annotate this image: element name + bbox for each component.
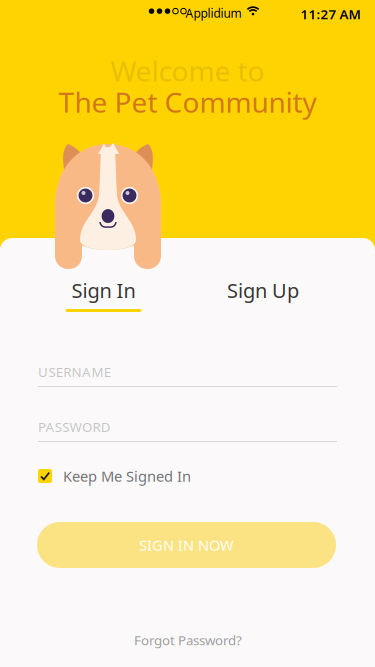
button[interactable]: Keep Me Signed In: [38, 465, 218, 487]
staticText: USERNAME: [38, 363, 111, 381]
staticText: Sign In: [71, 277, 135, 304]
button[interactable]: SIGN IN NOW: [37, 522, 336, 568]
staticText: Welcome to: [110, 52, 264, 89]
button[interactable]: Sign In: [38, 238, 169, 322]
staticText: Keep Me Signed In: [63, 466, 191, 486]
staticText: SIGN IN NOW: [139, 535, 234, 555]
staticText: Forgot Password?: [134, 631, 242, 649]
button[interactable]: Sign Up: [197, 238, 328, 322]
staticText: Applidium: [185, 5, 241, 21]
staticText: The Pet Community: [58, 83, 316, 120]
button[interactable]: Forgot Password?: [118, 627, 258, 653]
staticText: Sign Up: [227, 277, 299, 304]
staticText: 11:27 AM: [300, 5, 360, 23]
staticText: PASSWORD: [38, 418, 111, 436]
